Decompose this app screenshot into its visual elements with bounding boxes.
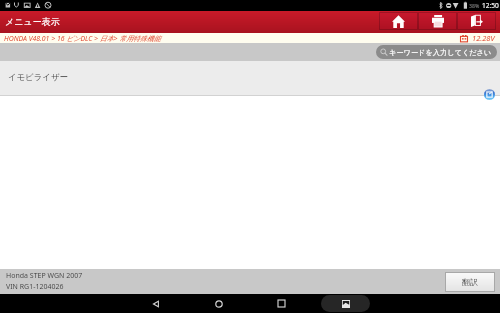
staticText: メニュー表示 <box>5 16 60 27</box>
staticText: 翻訳 <box>462 277 478 287</box>
button[interactable]: Back <box>146 294 165 313</box>
button[interactable]: Exit <box>457 12 496 30</box>
button[interactable]: 翻訳 <box>445 272 495 292</box>
staticText: Honda STEP WGN 2007 <box>6 271 83 281</box>
staticText: 38% <box>469 2 480 9</box>
button[interactable]: Info <box>484 89 495 100</box>
button[interactable]: イモビライザー <box>0 61 500 96</box>
staticText: キーワードを入力してください <box>389 48 492 57</box>
staticText: 12.28V <box>472 33 495 43</box>
button[interactable]: Home <box>209 294 228 313</box>
button[interactable]: Recents <box>272 294 291 313</box>
staticText: イモビライザー <box>8 72 68 83</box>
staticText: VIN RG1-1204026 <box>6 282 64 292</box>
button[interactable]: Hide keyboard <box>321 295 370 312</box>
button[interactable]: キーワードを入力してください <box>376 45 497 59</box>
staticText: 12:50 <box>482 1 499 10</box>
button[interactable]: Home <box>379 12 418 30</box>
staticText: HONDA V48.01 > 16 ピンDLC > 日本> 常用特殊機能 <box>4 34 161 43</box>
button[interactable]: Print <box>418 12 457 30</box>
